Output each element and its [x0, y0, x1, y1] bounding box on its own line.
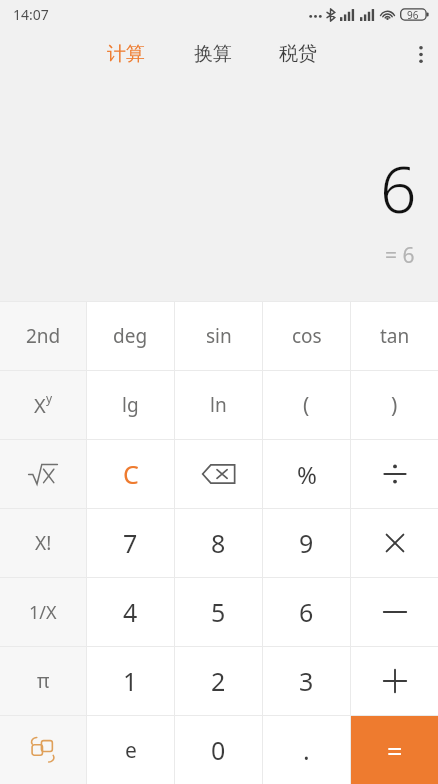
button[interactable]: lg — [87, 371, 174, 439]
button[interactable]: Backspace — [175, 440, 262, 508]
button[interactable]: 7 — [87, 509, 174, 577]
staticText: C — [123, 457, 139, 491]
button[interactable]: 2nd — [0, 302, 86, 370]
button[interactable]: π — [0, 647, 86, 715]
button[interactable]: 8 — [175, 509, 262, 577]
staticText: 2 — [211, 664, 226, 698]
staticText: π — [37, 668, 50, 694]
button[interactable]: ln — [175, 371, 262, 439]
button[interactable]: 2 — [175, 647, 262, 715]
button[interactable]: Unit converter — [0, 716, 86, 784]
staticText: 8 — [211, 526, 226, 560]
button[interactable]: X — [0, 371, 86, 439]
staticText: tan — [380, 323, 410, 349]
button[interactable]: Divide — [351, 440, 438, 508]
staticText: sin — [206, 323, 232, 349]
button[interactable]: 计算 — [98, 34, 154, 74]
staticText: 7 — [123, 526, 138, 560]
button[interactable]: tan — [351, 302, 438, 370]
staticText: 0 — [211, 733, 226, 767]
staticText: 14:07 — [13, 5, 49, 24]
staticText: ) — [391, 391, 398, 420]
staticText: 6 — [380, 145, 417, 232]
button[interactable]: cos — [263, 302, 350, 370]
button[interactable]: C — [87, 440, 174, 508]
staticText: 96 — [407, 8, 419, 22]
button[interactable]: 1/X — [0, 578, 86, 646]
staticText: deg — [113, 323, 148, 349]
staticText: 换算 — [194, 42, 232, 66]
button[interactable]: Multiply — [351, 509, 438, 577]
staticText: = 6 — [385, 241, 415, 270]
button[interactable]: Plus — [351, 647, 438, 715]
button[interactable]: 3 — [263, 647, 350, 715]
staticText: 1/X — [29, 600, 57, 625]
staticText: y — [46, 390, 53, 406]
staticText: cos — [292, 323, 322, 349]
staticText: ( — [303, 391, 310, 420]
button[interactable]: 5 — [175, 578, 262, 646]
staticText: X! — [35, 530, 52, 556]
staticText: 计算 — [107, 42, 145, 66]
button[interactable]: Minus — [351, 578, 438, 646]
staticText: 9 — [299, 526, 314, 560]
staticText: 3 — [299, 664, 314, 698]
button[interactable]: e — [87, 716, 174, 784]
staticText: 6 — [299, 595, 314, 629]
button[interactable]: 换算 — [185, 34, 241, 74]
button[interactable]: 1 — [87, 647, 174, 715]
button[interactable]: More options — [404, 34, 438, 75]
staticText: X — [34, 392, 46, 419]
button[interactable]: sin — [175, 302, 262, 370]
staticText: % — [297, 458, 317, 491]
button[interactable]: ) — [351, 371, 438, 439]
button[interactable]: Square root — [0, 440, 86, 508]
staticText: 4 — [123, 595, 138, 629]
staticText: 1 — [123, 664, 138, 698]
staticText: 5 — [211, 595, 226, 629]
staticText: ln — [210, 392, 227, 418]
button[interactable]: 税贷 — [270, 34, 326, 74]
button[interactable]: 6 — [263, 578, 350, 646]
staticText: = — [387, 732, 403, 769]
button[interactable]: 4 — [87, 578, 174, 646]
button[interactable]: 9 — [263, 509, 350, 577]
button[interactable]: 0 — [175, 716, 262, 784]
button[interactable]: . — [263, 716, 350, 784]
staticText: . — [303, 733, 310, 767]
button[interactable]: X! — [0, 509, 86, 577]
staticText: 税贷 — [279, 42, 317, 66]
button[interactable]: ( — [263, 371, 350, 439]
button[interactable]: % — [263, 440, 350, 508]
button[interactable]: Equals — [351, 716, 438, 784]
staticText: e — [125, 736, 137, 765]
button[interactable]: deg — [87, 302, 174, 370]
staticText: 2nd — [26, 323, 61, 349]
staticText: lg — [122, 392, 139, 418]
